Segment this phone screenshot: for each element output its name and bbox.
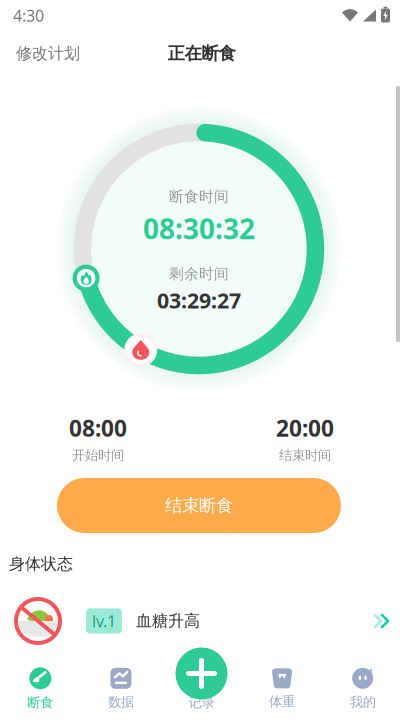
button[interactable]: lv.1 [0, 598, 403, 644]
staticText: 正在断食 [167, 43, 235, 64]
staticText: 08:00 [69, 413, 127, 443]
button[interactable]: 断食 [0, 659, 81, 720]
staticText: 4:30 [13, 5, 44, 26]
staticText: 体重 [269, 693, 295, 710]
staticText: lv.1 [92, 610, 116, 632]
staticText: 断食 [27, 694, 53, 711]
staticText: 08:30:32 [143, 210, 255, 247]
button[interactable]: 修改计划 [12, 38, 84, 69]
staticText: 03:29:27 [157, 286, 241, 314]
button[interactable]: 记录 [161, 659, 242, 720]
button[interactable]: 结束断食 [57, 478, 341, 533]
button[interactable]: 体重 [242, 660, 322, 719]
staticText: 数据 [108, 694, 134, 710]
staticText: 我的 [350, 694, 376, 710]
staticText: 结束时间 [279, 447, 331, 463]
staticText: 断食时间 [169, 188, 229, 206]
staticText: 20:00 [276, 413, 334, 443]
staticText: 血糖升高 [136, 611, 200, 631]
staticText: 剩余时间 [169, 265, 229, 283]
staticText: 记录 [188, 694, 214, 711]
staticText: 结束断食 [165, 495, 233, 516]
staticText: 身体状态 [9, 554, 73, 574]
staticText: 开始时间 [72, 447, 124, 463]
button[interactable]: 数据 [81, 660, 161, 719]
button[interactable]: 我的 [322, 660, 403, 719]
staticText: 修改计划 [16, 44, 80, 63]
button[interactable]: 记录 [175, 647, 227, 699]
